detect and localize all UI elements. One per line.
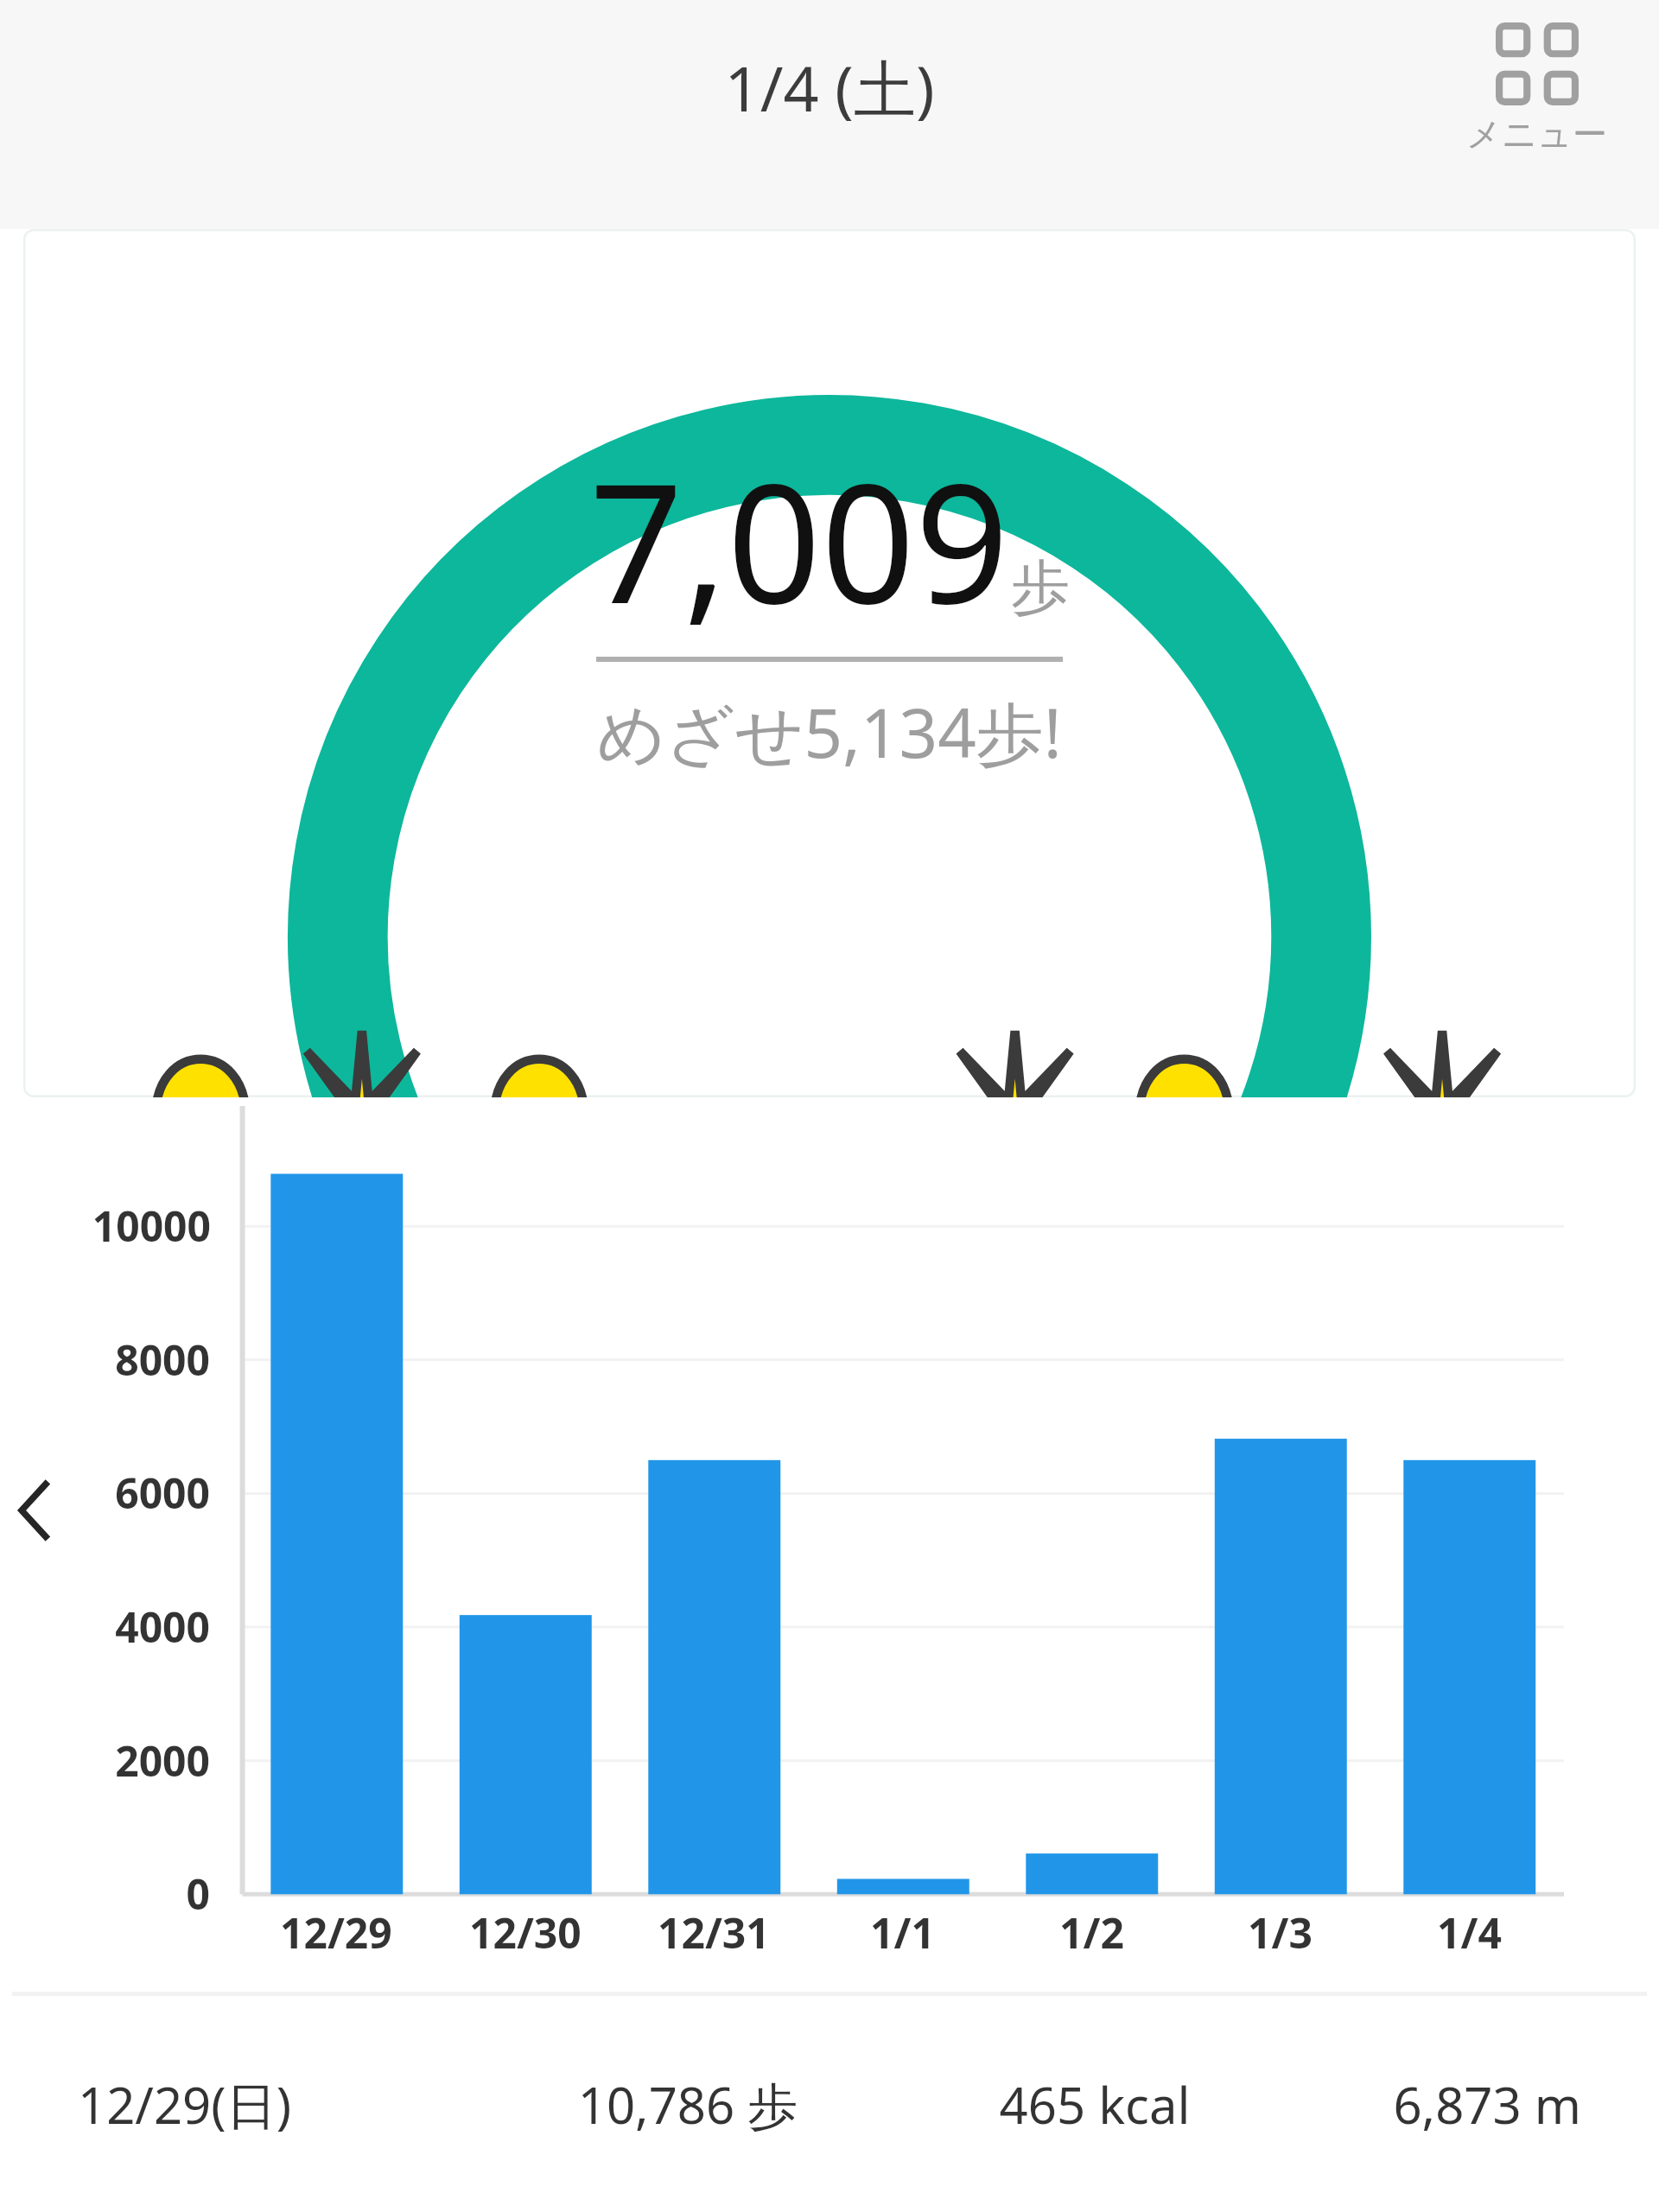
staticText: 1/4 — [1437, 1904, 1502, 1961]
staticText: 8000 — [115, 1332, 210, 1388]
button[interactable]: 12/29(日) — [0, 1996, 1659, 2212]
staticText: 12/31 — [658, 1904, 770, 1961]
staticText: 4000 — [115, 1599, 210, 1655]
staticText: 1/2 — [1059, 1904, 1124, 1961]
staticText: 2000 — [115, 1732, 210, 1789]
staticText: 7,009 — [589, 428, 1009, 652]
staticText: 6,873 m — [1281, 2070, 1581, 2139]
staticText: 0 — [186, 1866, 210, 1922]
staticText: 歩 — [1011, 551, 1070, 626]
staticText: 1/3 — [1248, 1904, 1313, 1961]
staticText: 12/30 — [469, 1904, 582, 1961]
staticText: 6000 — [115, 1465, 210, 1521]
staticText: 1/4 (土) — [724, 45, 935, 130]
staticText: 1/1 — [870, 1904, 935, 1961]
staticText: メニュー — [1466, 112, 1607, 156]
staticText: 10,786 歩 — [467, 2070, 909, 2139]
button[interactable]: メニュー — [1456, 16, 1618, 162]
staticText: 12/29(日) — [78, 2070, 467, 2139]
staticText: めざせ5,134歩! — [597, 686, 1062, 779]
button[interactable]: 前の週 — [0, 1464, 69, 1557]
button[interactable]: 7,009 — [23, 229, 1636, 1097]
staticText: 10000 — [92, 1198, 211, 1254]
staticText: 12/29 — [280, 1904, 392, 1961]
staticText: 465 kcal — [909, 2070, 1281, 2139]
button[interactable]: 前の週 — [0, 1097, 1659, 1992]
